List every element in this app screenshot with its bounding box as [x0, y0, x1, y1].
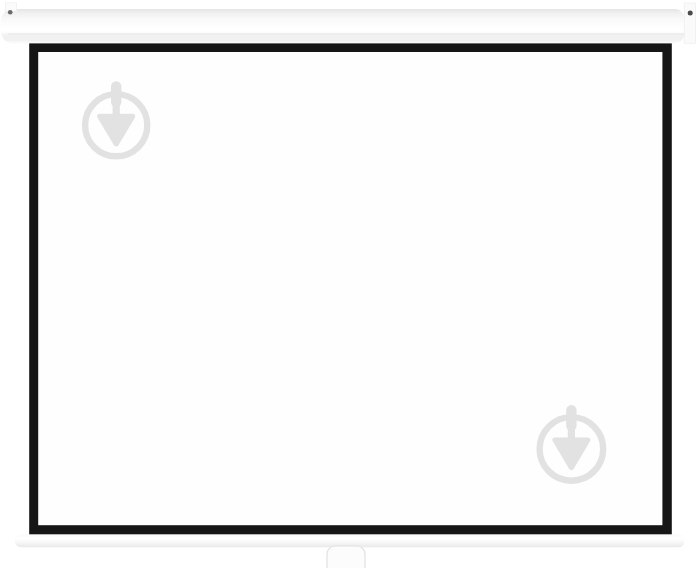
button[interactable]: Product photo: wall mounted projection s…: [0, 0, 700, 568]
